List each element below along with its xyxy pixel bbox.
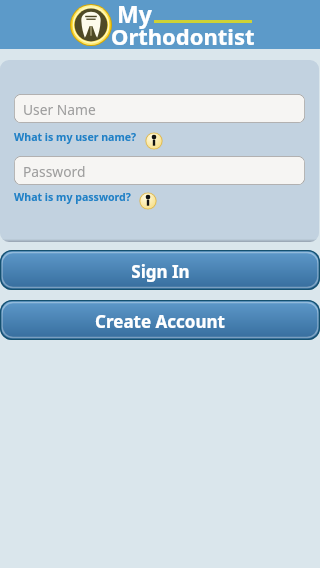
staticText: Password [23,162,86,181]
button[interactable]: Help info [145,132,163,150]
staticText: My [117,0,152,29]
staticText: User Name [23,100,96,119]
button[interactable]: What is my user name? [14,126,163,148]
staticText: What is my password? [14,190,131,204]
button[interactable]: Sign In [0,250,320,290]
staticText: Sign In [131,260,190,283]
button[interactable]: Create Account [0,300,320,340]
button[interactable]: Help info [139,192,157,210]
staticText: Create Account [95,310,225,333]
staticText: Orthodontist [111,21,255,51]
staticText: What is my user name? [14,130,137,144]
button[interactable]: What is my password? [14,186,157,208]
button[interactable]: Password [14,156,305,185]
button[interactable]: User Name [14,94,305,123]
